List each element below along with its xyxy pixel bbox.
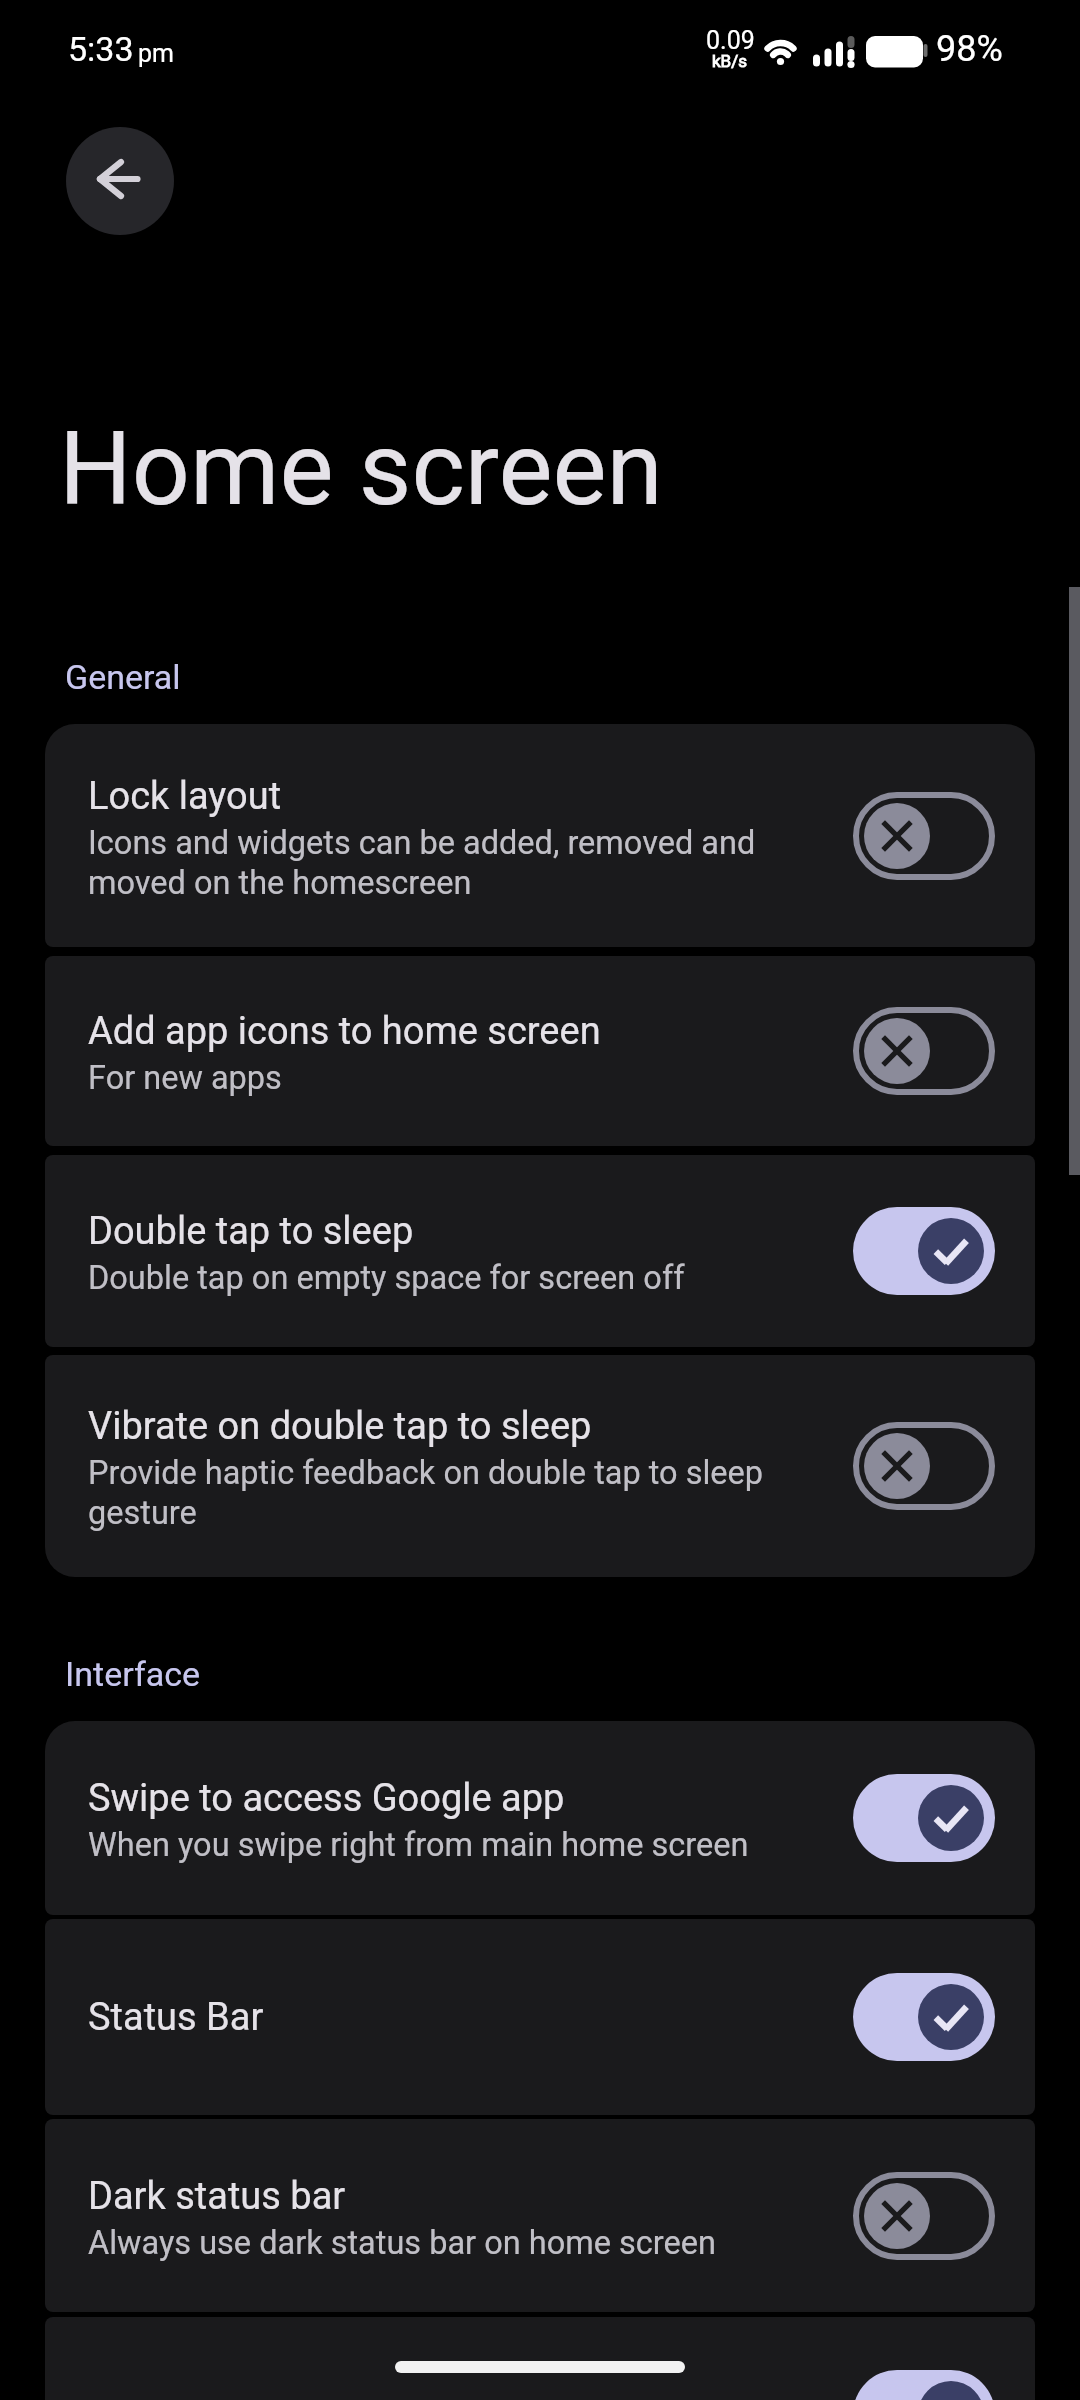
button[interactable]: Dark status bar [45,2119,1035,2312]
button[interactable]: Add app icons to home screen [45,956,1035,1146]
staticText: Add app icons to home screen [88,1009,601,1054]
staticText: Double tap to sleep [88,1209,414,1254]
button[interactable]: On [853,1207,995,1295]
button[interactable]: Off [853,1422,995,1510]
staticText: Lock layout [88,774,282,819]
button[interactable]: Swipe to access Google app [45,1721,1035,1915]
button[interactable]: Status Bar [45,1919,1035,2115]
button[interactable]: Lock layout [45,724,1035,947]
staticText: 0.09 [706,26,755,55]
staticText: Double tap on empty space for screen off [88,1259,685,1297]
staticText: kB/s [712,51,747,71]
button[interactable]: Back [66,127,174,235]
button[interactable]: On [853,1774,995,1862]
button[interactable]: On [853,2370,995,2400]
staticText: When you swipe right from main home scre… [88,1826,749,1864]
staticText: Provide haptic feedback on double tap to… [88,1454,835,1532]
staticText: Always use dark status bar on home scree… [88,2224,716,2262]
staticText: Icons and widgets can be added, removed … [88,824,835,902]
staticText: 98% [936,28,1003,70]
button[interactable]: Wallpaper scrolling [45,2317,1035,2400]
button[interactable]: Vibrate on double tap to sleep [45,1355,1035,1577]
staticText: Home screen [59,409,663,529]
button[interactable]: On [853,1973,995,2061]
staticText: Interface [65,1654,201,1694]
staticText: Status Bar [88,1995,264,2040]
button[interactable]: Double tap to sleep [45,1155,1035,1347]
staticText: 5:33 [68,29,134,69]
staticText: General [65,657,181,697]
button[interactable]: Off [853,1007,995,1095]
staticText: Dark status bar [88,2174,346,2219]
button[interactable]: Off [853,792,995,880]
button[interactable]: Off [853,2172,995,2260]
staticText: For new apps [88,1059,282,1097]
staticText: Swipe to access Google app [88,1776,565,1821]
staticText: Vibrate on double tap to sleep [88,1404,592,1449]
staticText: pm [138,39,174,68]
